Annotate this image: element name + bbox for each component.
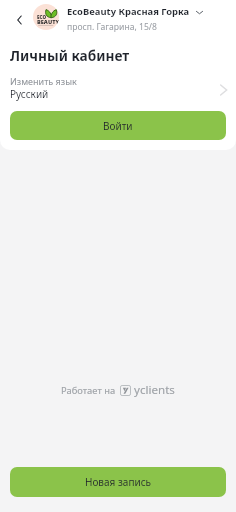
staticText: просп. Гагарина, 15/8 bbox=[67, 21, 157, 33]
staticText: Работает на bbox=[61, 384, 116, 397]
staticText: ECO bbox=[37, 14, 47, 20]
button[interactable]: Изменить язык bbox=[0, 72, 236, 102]
button[interactable]: Back bbox=[5, 5, 33, 33]
staticText: EcoBeauty Красная Горка bbox=[67, 5, 190, 18]
button[interactable]: Войти bbox=[10, 111, 226, 140]
staticText: Новая запись bbox=[85, 475, 152, 489]
staticText: Русский bbox=[10, 87, 49, 101]
staticText: Войти bbox=[103, 119, 133, 133]
staticText: Личный кабинет bbox=[10, 46, 130, 65]
staticText: Изменить язык bbox=[10, 75, 77, 87]
staticText: yclients bbox=[134, 382, 175, 398]
staticText: BEAUTY bbox=[37, 18, 59, 26]
button[interactable]: Новая запись bbox=[10, 467, 226, 497]
